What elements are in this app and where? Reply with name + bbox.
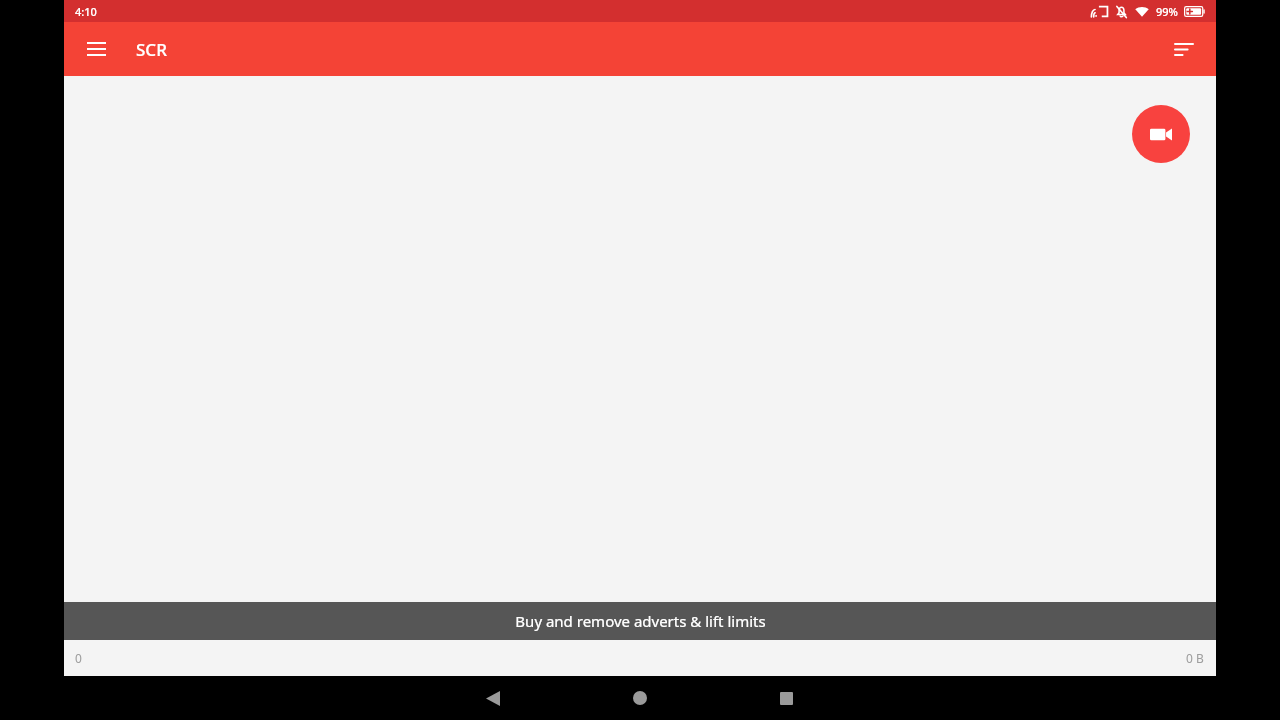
button[interactable]: Record screen [1132, 105, 1190, 163]
staticText: 0 [75, 650, 82, 666]
button[interactable]: Sort [1168, 33, 1200, 65]
staticText: 99% [1156, 4, 1178, 19]
staticText: Buy and remove adverts & lift limits [515, 611, 766, 631]
staticText: 0 B [1186, 650, 1204, 666]
staticText: SCR [136, 38, 167, 61]
staticText: 4:10 [75, 4, 97, 19]
button[interactable]: Back [471, 676, 515, 720]
button[interactable]: Home [618, 676, 662, 720]
button[interactable]: Buy and remove adverts & lift limits [64, 602, 1216, 640]
button[interactable]: Open navigation drawer [80, 33, 112, 65]
button[interactable]: Recent apps [764, 676, 808, 720]
